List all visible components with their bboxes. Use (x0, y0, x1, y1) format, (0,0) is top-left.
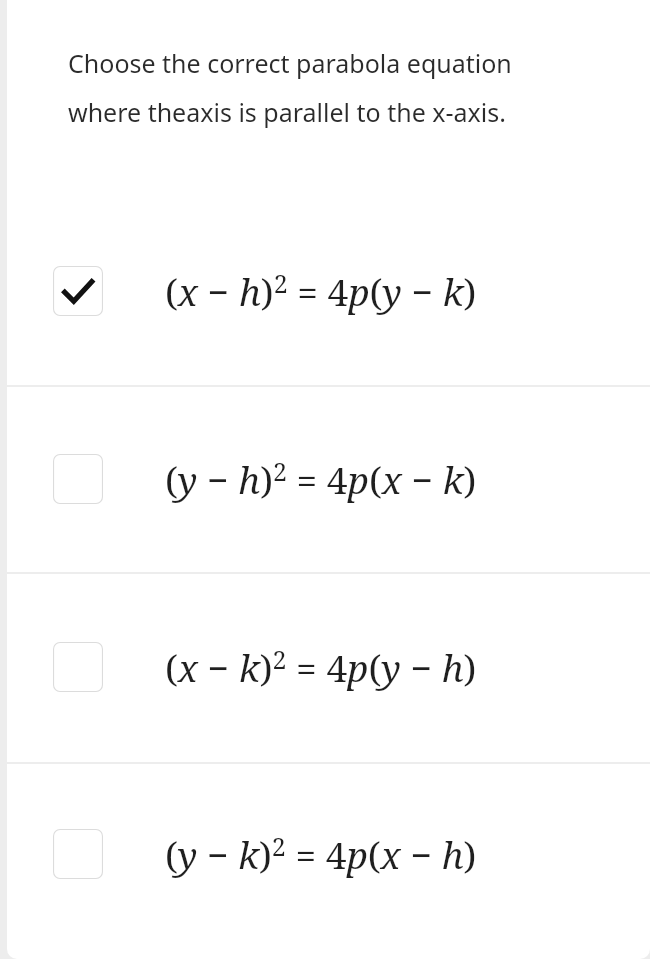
button[interactable]: Select answer (7, 385, 650, 572)
other: Select answer (53, 642, 103, 692)
button[interactable]: Select answer (7, 762, 650, 945)
button[interactable]: Selected answer (7, 196, 650, 385)
staticText: (x − k)2 = 4p(y − h) (165, 642, 477, 692)
staticText: Choose the correct parabola equation whe… (68, 46, 512, 130)
staticText: (y − k)2 = 4p(x − h) (165, 829, 477, 879)
button[interactable]: Select answer (7, 572, 650, 762)
other: Select answer (53, 454, 103, 504)
staticText: (y − h)2 = 4p(x − k) (165, 454, 477, 504)
other: Select answer (53, 829, 103, 879)
other: Selected answer (53, 266, 103, 316)
staticText: (x − h)2 = 4p(y − k) (165, 266, 477, 316)
